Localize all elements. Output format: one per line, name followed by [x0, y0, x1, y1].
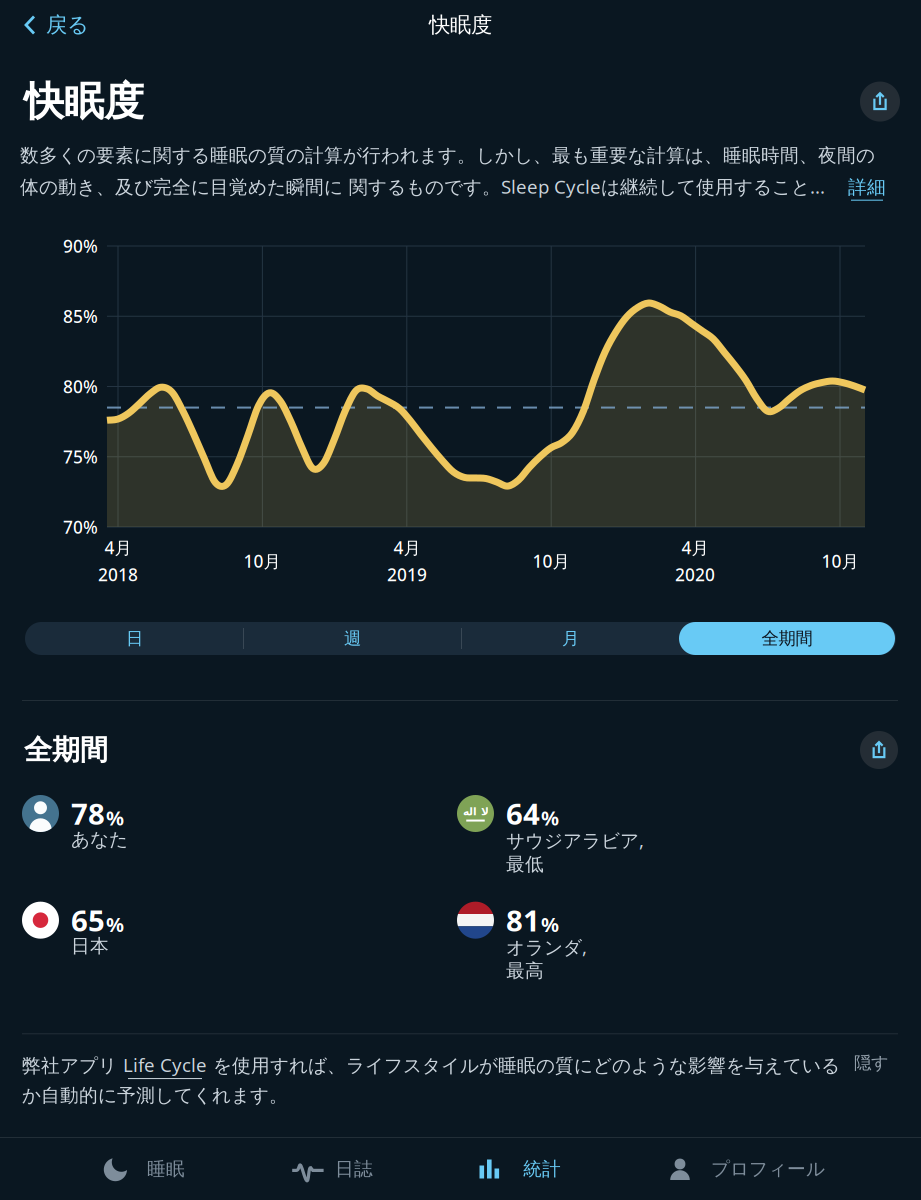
button[interactable]: 戻る — [0, 0, 99, 50]
button[interactable]: 詳細 — [848, 176, 886, 201]
button[interactable]: 共有 — [860, 731, 898, 769]
staticText: 10月 — [243, 549, 280, 572]
staticText: オランダ, — [506, 935, 587, 959]
staticText: 睡眠 — [147, 1157, 185, 1180]
button[interactable]: Life Cycle — [123, 1052, 207, 1079]
staticText: 快眠度 — [24, 77, 144, 126]
staticText: 4月 — [104, 536, 131, 559]
staticText: 2019 — [387, 563, 427, 586]
staticText: 戻る — [46, 12, 89, 38]
staticText: 体の動き、及び完全に目覚めた瞬間に 関するものです。Sleep Cycleは継続… — [20, 174, 825, 199]
staticText: 日誌 — [335, 1157, 373, 1180]
button[interactable]: 日 — [26, 622, 243, 655]
staticText: 週 — [344, 628, 361, 649]
staticText: 隠す — [854, 1052, 889, 1074]
staticText: % — [106, 804, 124, 831]
staticText: % — [541, 804, 559, 831]
staticText: 65 — [71, 901, 105, 940]
staticText: 最高 — [506, 959, 544, 982]
button[interactable]: 睡眠 — [103, 1138, 291, 1200]
staticText: プロフィール — [711, 1157, 825, 1180]
staticText: 2020 — [675, 563, 715, 586]
button[interactable]: 日誌 — [291, 1138, 479, 1200]
staticText: 全期間 — [761, 628, 812, 649]
staticText: % — [541, 911, 559, 938]
staticText: あなた — [71, 828, 128, 851]
staticText: 全期間 — [24, 733, 108, 767]
staticText: 快眠度 — [429, 12, 492, 38]
button[interactable]: 共有 — [860, 82, 900, 122]
staticText: 4月 — [681, 536, 708, 559]
staticText: 月 — [562, 628, 579, 649]
staticText: 85% — [63, 305, 98, 328]
staticText: % — [106, 911, 124, 938]
staticText: 10月 — [532, 549, 569, 572]
staticText: 数多くの要素に関する睡眠の質の計算が行われます。しかし、最も重要な計算は、睡眠時… — [20, 144, 875, 167]
button[interactable]: 週 — [244, 622, 461, 655]
button[interactable]: 隠す — [854, 1052, 889, 1074]
staticText: 2018 — [98, 563, 138, 586]
staticText: 81 — [506, 901, 540, 940]
staticText: 統計 — [523, 1157, 561, 1180]
staticText: か自動的に予測してくれます。 — [22, 1084, 288, 1107]
staticText: 90% — [63, 234, 98, 257]
staticText: を使用すれば、ライフスタイルが睡眠の質にどのような影響を与えている — [207, 1054, 840, 1077]
staticText: 詳細 — [848, 176, 886, 199]
staticText: 64 — [506, 794, 540, 833]
staticText: 10月 — [821, 549, 858, 572]
staticText: サウジアラビア, — [506, 828, 644, 853]
staticText: 80% — [63, 375, 98, 398]
staticText: 日本 — [71, 935, 109, 957]
staticText: 75% — [63, 445, 98, 468]
button[interactable]: 全期間 — [679, 622, 895, 655]
button[interactable]: 統計 — [479, 1138, 667, 1200]
staticText: 日 — [126, 628, 143, 649]
staticText: 最低 — [506, 853, 544, 876]
staticText: 78 — [71, 794, 105, 833]
staticText: 4月 — [393, 536, 420, 559]
button[interactable]: 月 — [462, 622, 679, 655]
staticText: 70% — [63, 515, 98, 538]
staticText: ﻻ ﺍﻟﻪ — [462, 805, 488, 817]
button[interactable]: プロフィール — [667, 1138, 855, 1200]
staticText: 弊社アプリ — [22, 1054, 123, 1077]
staticText: Life Cycle — [123, 1052, 207, 1077]
